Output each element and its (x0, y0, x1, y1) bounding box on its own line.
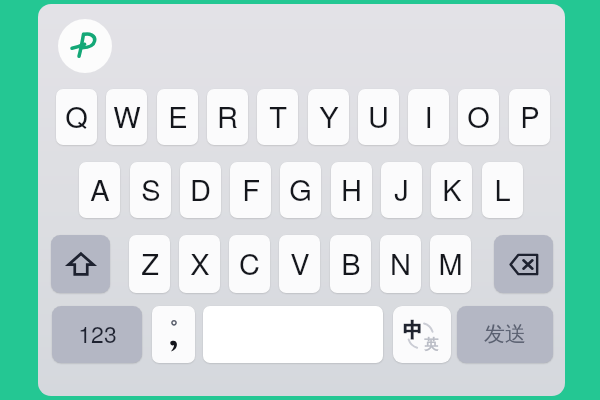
staticText: P (520, 95, 540, 137)
button[interactable]: M (430, 235, 471, 293)
staticText: U (368, 95, 389, 137)
staticText: D (190, 168, 211, 210)
button[interactable]: R (207, 89, 248, 145)
button[interactable]: P (509, 89, 550, 145)
staticText: J (394, 168, 409, 210)
staticText: Y (319, 95, 339, 137)
staticText: X (190, 242, 210, 284)
staticText: O (467, 95, 490, 137)
staticText: L (494, 168, 511, 210)
button[interactable]: B (330, 235, 371, 293)
button[interactable]: A (79, 162, 120, 218)
button[interactable]: H (331, 162, 372, 218)
staticText: E (168, 95, 188, 137)
button[interactable]: Q (56, 89, 97, 145)
button[interactable]: Backspace (494, 235, 553, 293)
button[interactable]: D (180, 162, 221, 218)
button[interactable]: Y (308, 89, 349, 145)
staticText: 英 (424, 336, 438, 354)
staticText: T (269, 95, 287, 137)
staticText: Z (141, 242, 159, 284)
staticText: A (90, 168, 110, 210)
staticText: Q (65, 95, 88, 137)
button[interactable]: X (179, 235, 220, 293)
button[interactable]: Z (129, 235, 170, 293)
button[interactable]: N (380, 235, 421, 293)
button[interactable]: F (230, 162, 271, 218)
button[interactable]: J (381, 162, 422, 218)
staticText: G (289, 168, 312, 210)
button[interactable]: Input method logo (58, 19, 112, 73)
staticText: 中 (403, 318, 423, 343)
button[interactable]: K (431, 162, 472, 218)
button[interactable]: E (157, 89, 198, 145)
staticText: W (113, 95, 141, 137)
staticText: R (217, 95, 238, 137)
button[interactable]: S (130, 162, 171, 218)
button[interactable]: 发送 (457, 306, 553, 363)
staticText: V (290, 242, 310, 284)
staticText: C (239, 242, 260, 284)
button[interactable]: 123 (52, 306, 142, 363)
staticText: K (442, 168, 462, 210)
button[interactable]: W (106, 89, 147, 145)
staticText: 发送 (484, 321, 526, 347)
staticText: N (390, 242, 411, 284)
button[interactable]: Switch Chinese English (393, 306, 451, 363)
staticText: S (141, 168, 161, 210)
staticText: M (438, 242, 463, 284)
button[interactable]: C (229, 235, 270, 293)
staticText: F (242, 168, 260, 210)
button[interactable]: I (408, 89, 449, 145)
staticText: 123 (78, 317, 117, 350)
button[interactable]: T (257, 89, 298, 145)
button[interactable]: U (358, 89, 399, 145)
button[interactable]: L (482, 162, 523, 218)
button[interactable]: Shift (51, 235, 110, 293)
staticText: I (424, 95, 433, 137)
staticText: B (341, 242, 361, 284)
button[interactable]: G (280, 162, 321, 218)
button[interactable]: Comma (152, 306, 195, 363)
button[interactable]: O (458, 89, 499, 145)
staticText: H (341, 168, 362, 210)
button[interactable]: V (279, 235, 320, 293)
